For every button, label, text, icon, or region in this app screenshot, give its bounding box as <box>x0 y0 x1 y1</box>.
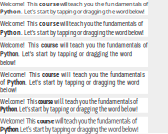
staticText: Welcome! This course will teach you the … <box>0 98 138 113</box>
staticText: Welcome! This course will teach you the … <box>0 117 138 133</box>
staticText: Welcome! This course will teach you the … <box>0 71 145 94</box>
staticText: Welcome! This course will teach you the … <box>0 41 148 67</box>
staticText: Welcome! This course will teach you the … <box>0 0 148 15</box>
staticText: Welcome! This course will teach you the … <box>0 19 144 37</box>
